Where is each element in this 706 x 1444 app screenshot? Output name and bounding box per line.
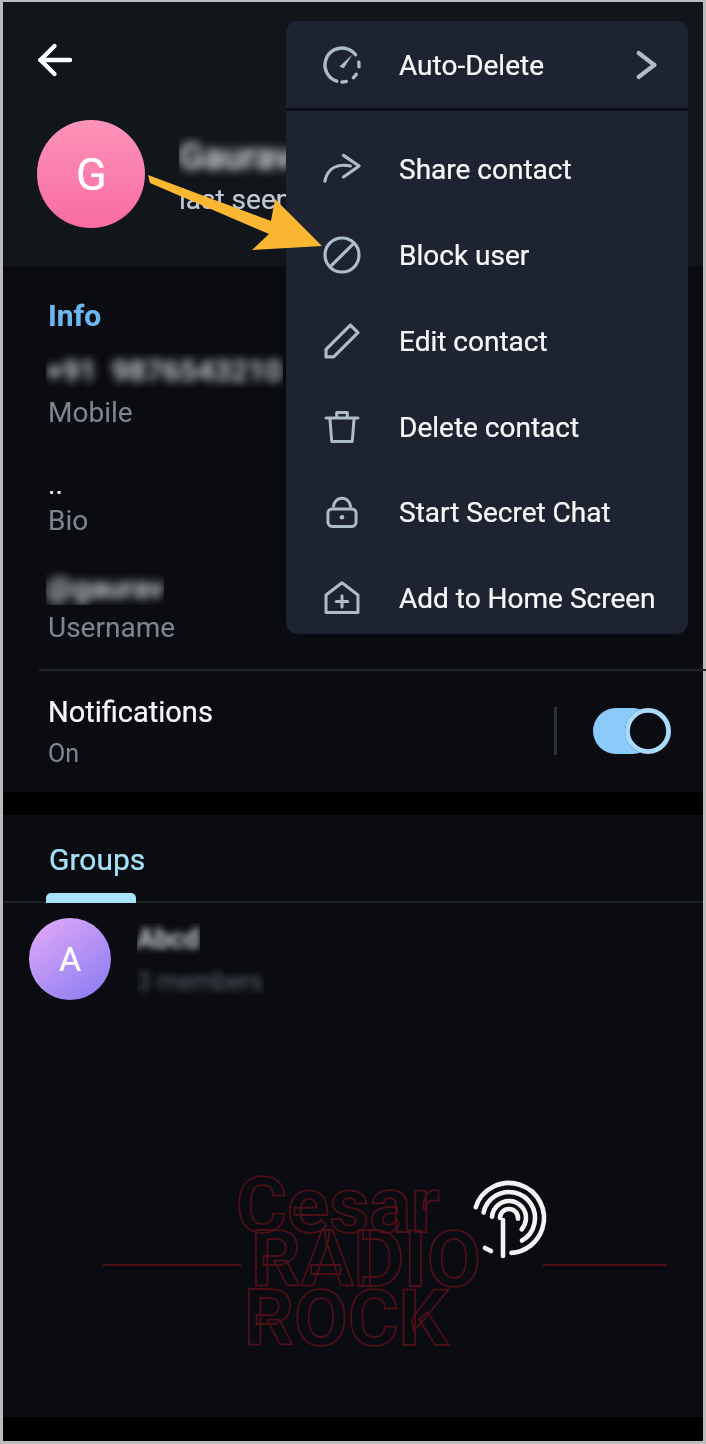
staticText: Bio [48,504,89,537]
button[interactable]: Back [25,30,85,90]
staticText: On [48,739,80,768]
button[interactable]: Edit contact [289,298,688,384]
button[interactable]: Start Secret Chat [289,469,688,555]
staticText: Gaurav [179,136,293,178]
staticText: Edit contact [399,325,548,358]
staticText: @gaurav [46,570,164,605]
button[interactable]: Profile photo [37,120,145,228]
staticText: G [76,148,107,201]
staticText: 3 members [137,967,264,996]
staticText: Start Secret Chat [399,496,611,529]
staticText: ROCK [244,1273,449,1364]
button[interactable]: Notifications toggle [593,708,671,754]
staticText: last seen [179,183,292,216]
staticText: RADIO [251,1214,481,1305]
staticText: Mobile [48,396,133,429]
staticText: Username [48,611,176,644]
button[interactable]: Delete contact [289,384,688,470]
staticText: +91 9876543210 [46,353,283,388]
button[interactable]: Add to Home Screen [289,555,688,641]
button[interactable]: Auto-Delete [286,21,688,109]
staticText: Delete contact [399,411,580,444]
button[interactable]: Share contact [289,126,688,212]
staticText: Cesar [236,1160,440,1251]
staticText: A [59,939,82,979]
staticText: Block user [399,239,530,272]
staticText: Auto-Delete [399,49,545,82]
staticText: Notifications [48,695,213,729]
staticText: Share contact [399,153,572,186]
button[interactable]: A [3,905,703,1013]
staticText: .. [48,468,63,501]
button[interactable]: Notifications [3,671,703,791]
button[interactable]: Block user [289,212,688,298]
staticText: Add to Home Screen [399,582,656,615]
staticText: Groups [49,842,146,877]
staticText: Info [48,298,102,333]
staticText: Abcd [137,923,200,955]
